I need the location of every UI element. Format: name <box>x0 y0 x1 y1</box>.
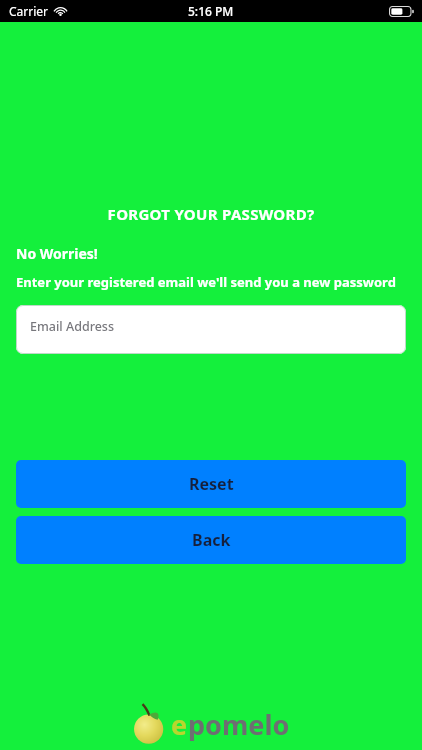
button[interactable]: Email Address <box>16 305 406 354</box>
button[interactable]: Back <box>16 516 406 564</box>
staticText: Email Address <box>30 318 115 335</box>
staticText: Back <box>192 529 231 551</box>
staticText: e <box>171 706 188 743</box>
staticText: Carrier <box>9 3 49 19</box>
staticText: Reset <box>189 473 234 495</box>
staticText: pomelo <box>188 706 290 743</box>
button[interactable]: Reset <box>16 460 406 508</box>
staticText: Enter your registered email we'll send y… <box>16 273 396 291</box>
staticText: FORGOT YOUR PASSWORD? <box>0 204 422 224</box>
staticText: 5:16 PM <box>188 3 234 19</box>
staticText: No Worries! <box>16 244 98 263</box>
